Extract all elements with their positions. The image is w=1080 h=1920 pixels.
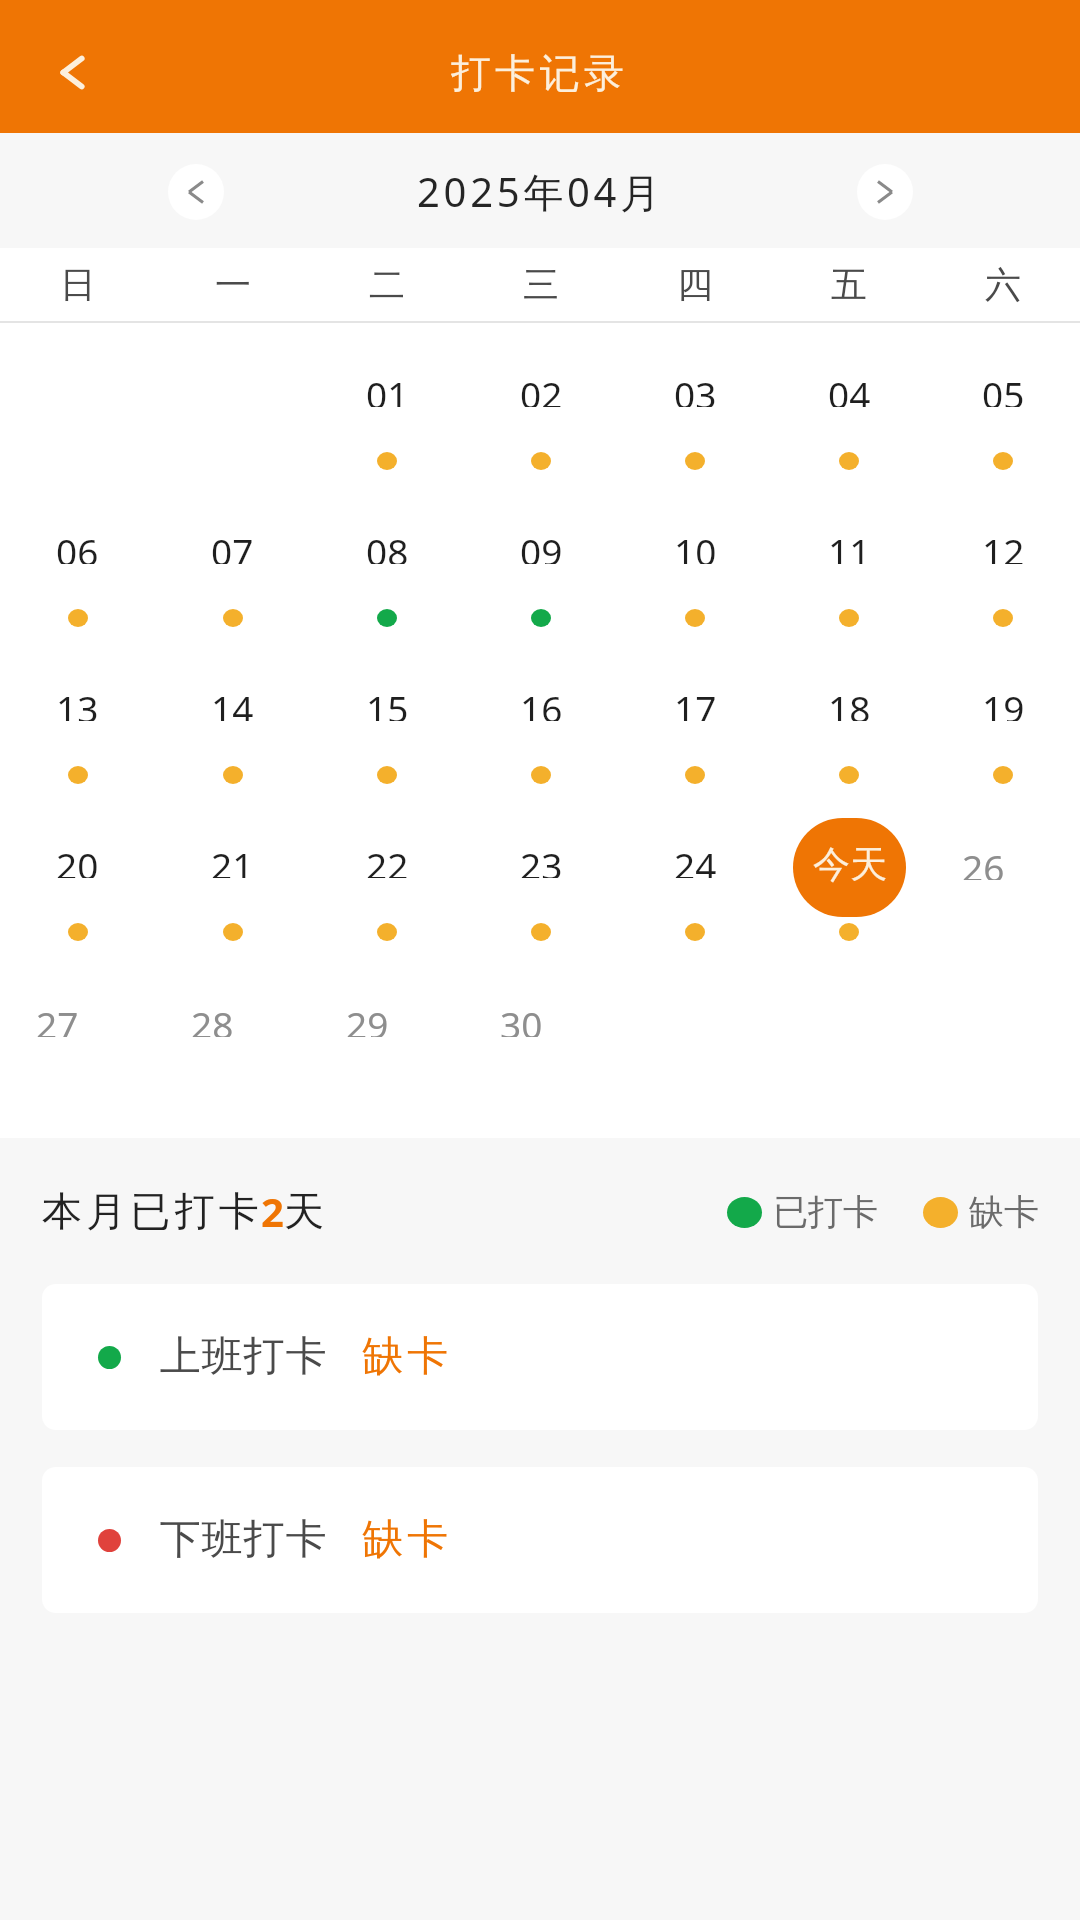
staticText: 10 <box>674 526 717 564</box>
staticText: 一 <box>215 262 251 307</box>
button[interactable]: 24 <box>618 794 772 951</box>
button[interactable]: 缺卡 <box>923 1190 1039 1234</box>
staticText: 16 <box>520 683 563 721</box>
staticText: 28 <box>191 999 234 1037</box>
button[interactable]: 12 <box>926 480 1080 637</box>
staticText: 09 <box>520 526 563 564</box>
staticText: 21 <box>211 840 254 878</box>
button[interactable]: Next month <box>857 164 913 220</box>
staticText: 30 <box>500 999 543 1037</box>
button[interactable]: 03 <box>618 323 772 480</box>
button[interactable]: 07 <box>155 480 310 637</box>
staticText: 打卡记录 <box>451 48 629 98</box>
staticText: 15 <box>366 683 409 721</box>
staticText: 缺卡 <box>360 1514 450 1566</box>
button[interactable]: 28 <box>155 951 310 1108</box>
staticText: 缺卡 <box>360 1331 450 1383</box>
button[interactable]: 23 <box>464 794 618 951</box>
staticText: 23 <box>520 840 563 878</box>
button[interactable]: 20 <box>0 794 155 951</box>
button[interactable]: 06 <box>0 480 155 637</box>
button[interactable]: Back <box>26 26 119 119</box>
button[interactable]: 04 <box>772 323 926 480</box>
staticText: 2 <box>261 1184 284 1238</box>
staticText: 05 <box>982 369 1025 407</box>
staticText: 07 <box>211 526 254 564</box>
button[interactable]: 05 <box>926 323 1080 480</box>
staticText: 01 <box>366 369 409 407</box>
staticText: 17 <box>674 683 717 721</box>
staticText: 本月已打卡 <box>40 1186 261 1236</box>
button[interactable]: 26 <box>926 794 1080 951</box>
staticText: 26 <box>962 842 1005 880</box>
button[interactable]: 17 <box>618 637 772 794</box>
button[interactable]: 今天 <box>772 794 926 951</box>
button[interactable]: 14 <box>155 637 310 794</box>
staticText: 上班打卡 <box>159 1331 327 1383</box>
staticText: 02 <box>520 369 563 407</box>
staticText: 19 <box>982 683 1025 721</box>
button[interactable]: 30 <box>464 951 618 1108</box>
staticText: 14 <box>211 683 254 721</box>
staticText: 缺卡 <box>969 1190 1039 1234</box>
button[interactable]: Previous month <box>168 164 224 220</box>
button[interactable]: 下班打卡 <box>42 1467 1038 1613</box>
button[interactable]: 29 <box>310 951 464 1108</box>
staticText: 08 <box>366 526 409 564</box>
staticText: 12 <box>982 526 1025 564</box>
staticText: 18 <box>828 683 871 721</box>
button[interactable]: 27 <box>0 951 155 1108</box>
staticText: 2025年04月 <box>417 164 664 219</box>
staticText: 日 <box>60 262 96 307</box>
staticText: 三 <box>523 262 559 307</box>
staticText: 11 <box>828 526 871 564</box>
button[interactable]: 上班打卡 <box>42 1284 1038 1430</box>
staticText: 今天 <box>813 841 887 888</box>
staticText: 已打卡 <box>773 1190 878 1234</box>
button[interactable]: 16 <box>464 637 618 794</box>
staticText: 二 <box>369 262 405 307</box>
button[interactable]: 10 <box>618 480 772 637</box>
staticText: 29 <box>346 999 389 1037</box>
staticText: 06 <box>56 526 99 564</box>
button[interactable]: 21 <box>155 794 310 951</box>
button[interactable]: 18 <box>772 637 926 794</box>
staticText: 20 <box>56 840 99 878</box>
button[interactable]: 已打卡 <box>727 1190 878 1234</box>
staticText: 03 <box>674 369 717 407</box>
button[interactable]: 08 <box>310 480 464 637</box>
button[interactable]: 09 <box>464 480 618 637</box>
button[interactable]: 13 <box>0 637 155 794</box>
staticText: 六 <box>985 262 1021 307</box>
staticText: 13 <box>56 683 99 721</box>
staticText: 04 <box>828 369 871 407</box>
button[interactable]: 11 <box>772 480 926 637</box>
staticText: 下班打卡 <box>159 1514 327 1566</box>
staticText: 四 <box>677 262 713 307</box>
staticText: 24 <box>674 840 717 878</box>
button[interactable]: 15 <box>310 637 464 794</box>
button[interactable]: 22 <box>310 794 464 951</box>
staticText: 27 <box>36 999 79 1037</box>
button[interactable]: 02 <box>464 323 618 480</box>
button[interactable]: 19 <box>926 637 1080 794</box>
button[interactable]: 今天 <box>793 818 906 917</box>
button[interactable]: 01 <box>310 323 464 480</box>
staticText: 22 <box>366 840 409 878</box>
staticText: 天 <box>284 1186 324 1236</box>
staticText: 五 <box>831 262 867 307</box>
